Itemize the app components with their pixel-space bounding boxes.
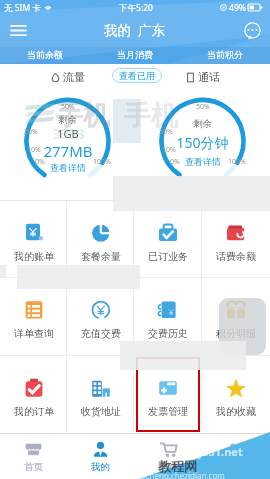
button[interactable]: 购物 xyxy=(134,434,202,479)
button[interactable]: 已订业务 xyxy=(134,201,202,277)
staticText: 当前余额 xyxy=(27,49,63,60)
button[interactable]: 当前余额 xyxy=(0,46,90,62)
staticText: 查看详情 xyxy=(185,156,221,167)
staticText: 20% xyxy=(159,127,173,137)
button[interactable]: 通话 xyxy=(186,70,220,84)
button[interactable]: 当前积分 xyxy=(180,46,270,62)
button[interactable]: 套餐余量 xyxy=(67,201,134,277)
button[interactable]: 查看已用 xyxy=(112,68,162,83)
staticText: 100% xyxy=(93,157,111,167)
staticText: 剩余 xyxy=(193,118,212,130)
staticText: 购物 xyxy=(159,461,178,473)
staticText: 查看已用 xyxy=(119,70,155,81)
staticText: 套餐余量 xyxy=(81,250,121,263)
staticText: 手机 xyxy=(124,99,178,133)
button[interactable]: 更多 xyxy=(202,434,270,479)
button[interactable]: 我的 xyxy=(104,22,165,39)
button[interactable]: 我的收藏 xyxy=(202,356,270,433)
staticText: 流量 xyxy=(63,70,85,84)
staticText: 我的 xyxy=(104,22,131,39)
button[interactable]: 话费余额 xyxy=(202,201,270,277)
staticText: 3333 xyxy=(52,124,85,143)
staticText: 277MB xyxy=(43,141,93,161)
staticText: 10% xyxy=(162,145,176,155)
button[interactable]: 收货地址 xyxy=(67,356,134,433)
staticText: 150分钟 xyxy=(176,133,229,152)
staticText: 广东 xyxy=(138,22,165,39)
button[interactable]: 充值交费 xyxy=(67,278,134,355)
staticText: 发票管理 xyxy=(148,405,188,418)
button[interactable]: 发票管理 xyxy=(134,356,202,433)
staticText: 1GB xyxy=(57,126,79,141)
staticText: 手机 xyxy=(56,99,110,133)
button[interactable]: 查看详情 xyxy=(50,162,86,173)
staticText: 50% xyxy=(196,102,210,112)
staticText: 我的订单 xyxy=(14,405,54,418)
button[interactable]: 我的账单 xyxy=(0,201,67,277)
staticText: jb51.net xyxy=(198,444,243,459)
button[interactable]: 我的 xyxy=(67,434,134,479)
staticText: 当月消费 xyxy=(117,49,153,60)
staticText: 下午5:20 xyxy=(119,2,153,14)
staticText: 交费历史 xyxy=(148,327,188,340)
staticText: 充值交费 xyxy=(81,327,121,340)
staticText: 20% xyxy=(24,127,38,137)
staticText: 我的收藏 xyxy=(216,405,256,418)
staticText: 详单查询 xyxy=(14,327,54,340)
button[interactable]: 当月消费 xyxy=(90,46,180,62)
staticText: 通话 xyxy=(198,70,220,84)
staticText: 已订业务 xyxy=(148,250,188,263)
staticText: 49% xyxy=(229,2,246,14)
staticText: 0% xyxy=(170,157,180,167)
button[interactable]: Messages xyxy=(234,15,270,45)
button[interactable]: 交费历史 xyxy=(134,278,202,355)
staticText: 无 SIM 卡 xyxy=(4,2,41,14)
staticText: 查看详情 xyxy=(50,162,86,173)
staticText: jiaocheng.chezidian.com xyxy=(132,470,225,479)
staticText: 积分明细 xyxy=(216,327,256,340)
staticText: 我的账单 xyxy=(14,250,54,263)
button[interactable]: 我的订单 xyxy=(0,356,67,433)
button[interactable]: 详单查询 xyxy=(0,278,67,355)
staticText: 0% xyxy=(35,157,45,167)
button[interactable]: Menu xyxy=(0,15,36,45)
staticText: 话费余额 xyxy=(216,250,256,263)
staticText: 当前积分 xyxy=(207,49,243,60)
button[interactable]: 流量 xyxy=(51,70,85,84)
staticText: 剩余 xyxy=(58,114,77,126)
staticText: 100% xyxy=(228,157,246,167)
button[interactable]: 积分明细 xyxy=(202,278,270,355)
staticText: 教程网 xyxy=(158,458,197,474)
staticText: 50% xyxy=(61,102,75,112)
button[interactable]: 首页 xyxy=(0,434,67,479)
staticText: 收货地址 xyxy=(81,405,121,418)
staticText: 10% xyxy=(27,145,41,155)
button[interactable]: 查看详情 xyxy=(185,156,221,167)
staticText: 首页 xyxy=(24,461,43,473)
staticText: 我的 xyxy=(91,461,110,473)
